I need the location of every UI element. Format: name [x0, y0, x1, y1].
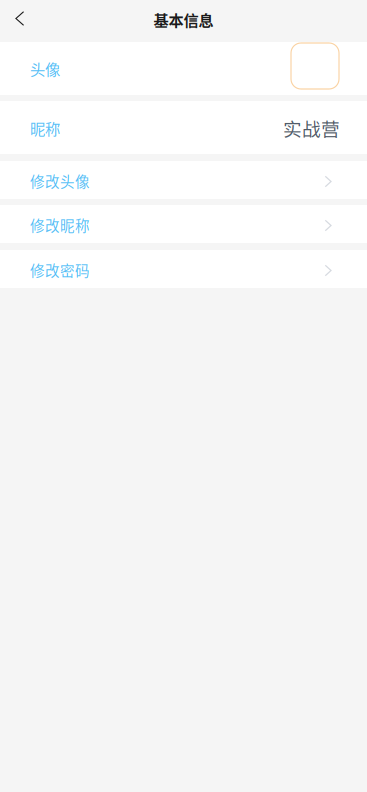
- button[interactable]: 修改密码: [0, 250, 367, 288]
- staticText: 修改头像: [30, 170, 90, 191]
- staticText: 修改密码: [30, 259, 90, 280]
- button[interactable]: 头像: [0, 42, 367, 95]
- button[interactable]: 修改头像: [0, 161, 367, 199]
- staticText: 修改昵称: [30, 214, 90, 235]
- staticText: 基本信息: [153, 8, 213, 30]
- button[interactable]: 昵称: [0, 101, 367, 154]
- button[interactable]: 修改昵称: [0, 205, 367, 243]
- staticText: 昵称: [30, 117, 60, 139]
- button[interactable]: Back: [0, 0, 37, 42]
- staticText: 头像: [30, 57, 60, 80]
- staticText: 实战营: [283, 114, 340, 141]
